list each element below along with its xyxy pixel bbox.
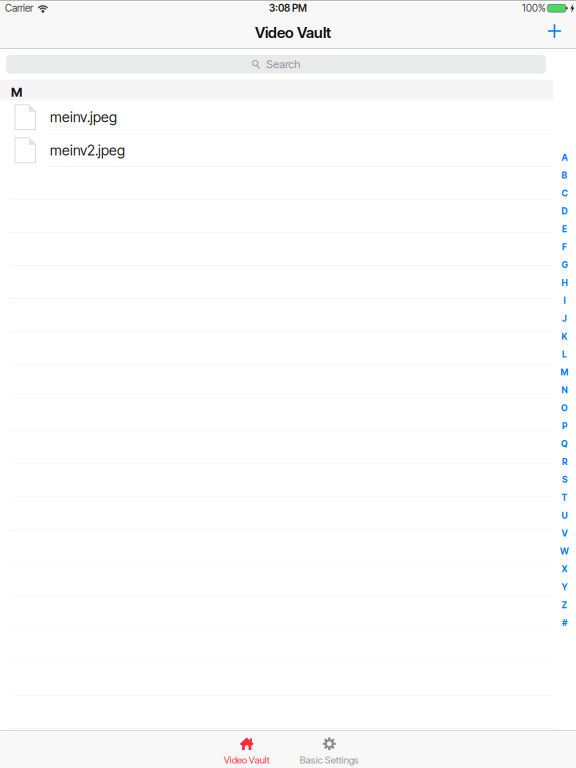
staticText: G [561,259,567,270]
staticText: X [561,564,567,574]
staticText: 100% [522,2,546,14]
button[interactable]: meinv.jpeg [0,101,553,134]
staticText: M [11,84,22,100]
staticText: N [561,385,567,395]
staticText: B [561,170,567,181]
staticText: Y [561,582,567,592]
staticText: V [561,528,567,539]
staticText: L [562,349,567,360]
staticText: E [562,224,567,234]
staticText: Basic Settings [300,754,359,766]
staticText: # [562,617,567,628]
staticText: Search [266,57,300,71]
staticText: Z [561,600,567,610]
staticText: 3:08 PM [269,2,307,14]
staticText: J [562,313,567,324]
staticText: C [561,188,567,198]
staticText: I [563,295,565,306]
staticText: meinv2.jpeg [50,142,125,159]
staticText: F [562,242,567,252]
button[interactable]: Search [6,55,546,74]
button[interactable]: meinv2.jpeg [0,134,553,167]
staticText: T [561,492,567,503]
button[interactable]: Add [538,20,571,49]
staticText: O [561,403,568,413]
staticText: W [560,546,569,556]
staticText: Q [561,438,568,449]
staticText: R [562,456,567,467]
staticText: Video Vault [255,23,331,42]
button[interactable]: Video Vault [205,730,288,768]
staticText: H [561,277,567,288]
staticText: M [560,367,568,377]
staticText: Carrier [5,2,33,14]
staticText: P [562,421,567,431]
staticText: S [562,474,567,485]
staticText: meinv.jpeg [50,109,117,126]
button[interactable]: Section index [553,148,576,632]
button[interactable]: Basic Settings [288,730,371,768]
staticText: D [561,206,567,216]
staticText: U [561,510,567,521]
staticText: Video Vault [224,754,270,766]
staticText: K [561,331,567,342]
staticText: A [561,152,567,163]
